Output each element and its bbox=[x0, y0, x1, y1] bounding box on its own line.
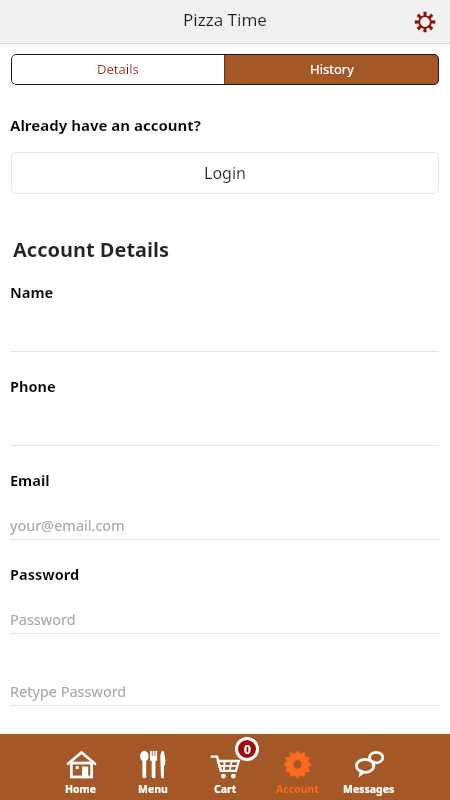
staticText: Password bbox=[10, 609, 76, 629]
staticText: Details bbox=[97, 60, 139, 78]
button[interactable]: History bbox=[225, 54, 439, 85]
button[interactable]: Phone bbox=[10, 374, 440, 446]
button[interactable]: Email bbox=[10, 468, 440, 540]
staticText: Password bbox=[10, 564, 80, 584]
staticText: History bbox=[310, 60, 354, 78]
staticText: Account Details bbox=[13, 236, 170, 263]
staticText: Messages bbox=[343, 782, 395, 796]
staticText: Menu bbox=[138, 782, 168, 796]
staticText: Account bbox=[276, 782, 319, 796]
staticText: Home bbox=[65, 782, 97, 796]
button[interactable]: Account bbox=[261, 734, 333, 800]
button[interactable]: 0 bbox=[189, 734, 261, 800]
staticText: your@email.com bbox=[10, 515, 125, 535]
staticText: 0 bbox=[244, 741, 251, 757]
button[interactable]: Details bbox=[11, 54, 224, 85]
button[interactable]: Menu bbox=[117, 734, 189, 800]
staticText: Phone bbox=[10, 376, 56, 396]
staticText: Already have an account? bbox=[10, 115, 201, 135]
button[interactable]: Retype Password bbox=[10, 660, 440, 706]
staticText: Email bbox=[10, 470, 50, 490]
staticText: Retype Password bbox=[10, 681, 127, 701]
button[interactable]: Home bbox=[45, 734, 117, 800]
button[interactable]: Settings bbox=[408, 5, 442, 39]
staticText: Cart bbox=[214, 782, 237, 796]
button[interactable]: Name bbox=[10, 280, 440, 352]
staticText: Pizza Time bbox=[183, 8, 267, 31]
button[interactable]: Password bbox=[10, 562, 440, 634]
staticText: Name bbox=[10, 282, 54, 302]
staticText: Login bbox=[204, 162, 246, 184]
button[interactable]: Messages bbox=[333, 734, 405, 800]
button[interactable]: Login bbox=[11, 152, 439, 194]
